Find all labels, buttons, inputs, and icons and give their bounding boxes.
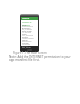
staticText: Note: Add the INTERNET permission to you… <box>9 55 71 59</box>
staticText: Storage <box>22 42 29 44</box>
button[interactable]: Battery <box>21 45 38 48</box>
button[interactable]: Storage <box>21 42 38 45</box>
staticText: Settings <box>22 17 30 20</box>
button[interactable]: Wi-Fi <box>21 24 38 27</box>
button[interactable]: More <box>21 33 38 36</box>
staticText: On, 2 devices <box>22 28 32 30</box>
staticText: Wi-Fi <box>22 24 27 26</box>
button[interactable]: Data usage <box>21 30 38 33</box>
staticText: Figure 1. The main screen <box>13 51 47 55</box>
staticText: Sound <box>22 39 28 41</box>
button[interactable]: Display <box>21 36 38 39</box>
button[interactable]: Sound <box>21 39 38 42</box>
button[interactable]: Settings <box>21 17 38 20</box>
button[interactable]: Bluetooth <box>21 27 38 30</box>
button[interactable]: Home <box>27 49 32 51</box>
staticText: Adaptive bright <box>22 37 34 39</box>
staticText: VPN, tethering <box>22 34 33 36</box>
staticText: 48 GB free <box>22 43 30 45</box>
staticText: Data usage <box>22 30 32 32</box>
staticText: More <box>22 33 27 35</box>
staticText: 82%, 6h left <box>22 46 31 48</box>
staticText: 1.4 GB used <box>22 31 31 33</box>
staticText: Display <box>22 36 29 38</box>
staticText: Ring volume <box>22 40 32 42</box>
staticText: GuestNetwork <box>22 25 33 27</box>
staticText: Wireless & networks <box>22 21 39 27</box>
staticText: Battery <box>22 45 29 47</box>
staticText: Bluetooth <box>22 27 31 29</box>
staticText: app manifest file first. <box>9 58 40 62</box>
